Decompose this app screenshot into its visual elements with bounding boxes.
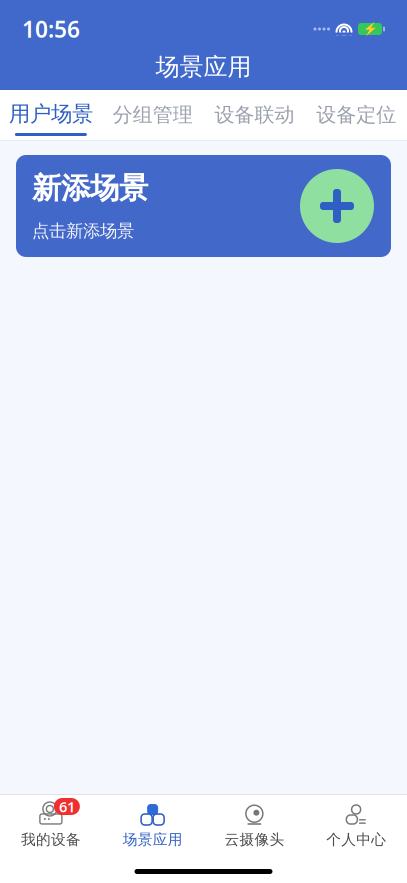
staticText: 场景应用 <box>155 52 251 82</box>
staticText: 我的设备 <box>21 830 81 848</box>
button[interactable]: 用户场景 <box>0 90 102 140</box>
button[interactable]: 云摄像头 <box>203 799 305 851</box>
staticText: 点击新添场景 <box>32 220 134 242</box>
button[interactable]: 设备定位 <box>305 90 407 140</box>
staticText: 设备定位 <box>316 102 396 127</box>
button[interactable]: 新添场景 <box>16 155 391 257</box>
button[interactable]: 分组管理 <box>102 90 204 140</box>
button[interactable]: 个人中心 <box>305 799 407 851</box>
staticText: 场景应用 <box>123 830 183 848</box>
button[interactable]: 设备联动 <box>203 90 305 140</box>
staticText: 用户场景 <box>9 101 93 127</box>
staticText: ⚡ <box>362 22 377 36</box>
button[interactable]: 场景应用 <box>102 799 204 851</box>
button[interactable]: 61 <box>0 799 102 851</box>
staticText: 设备联动 <box>214 102 294 127</box>
staticText: 10:56 <box>22 14 80 44</box>
staticText: 新添场景 <box>32 170 148 206</box>
staticText: 61 <box>59 797 75 816</box>
staticText: 分组管理 <box>113 102 193 127</box>
staticText: 云摄像头 <box>224 830 284 848</box>
staticText: 个人中心 <box>326 830 386 848</box>
